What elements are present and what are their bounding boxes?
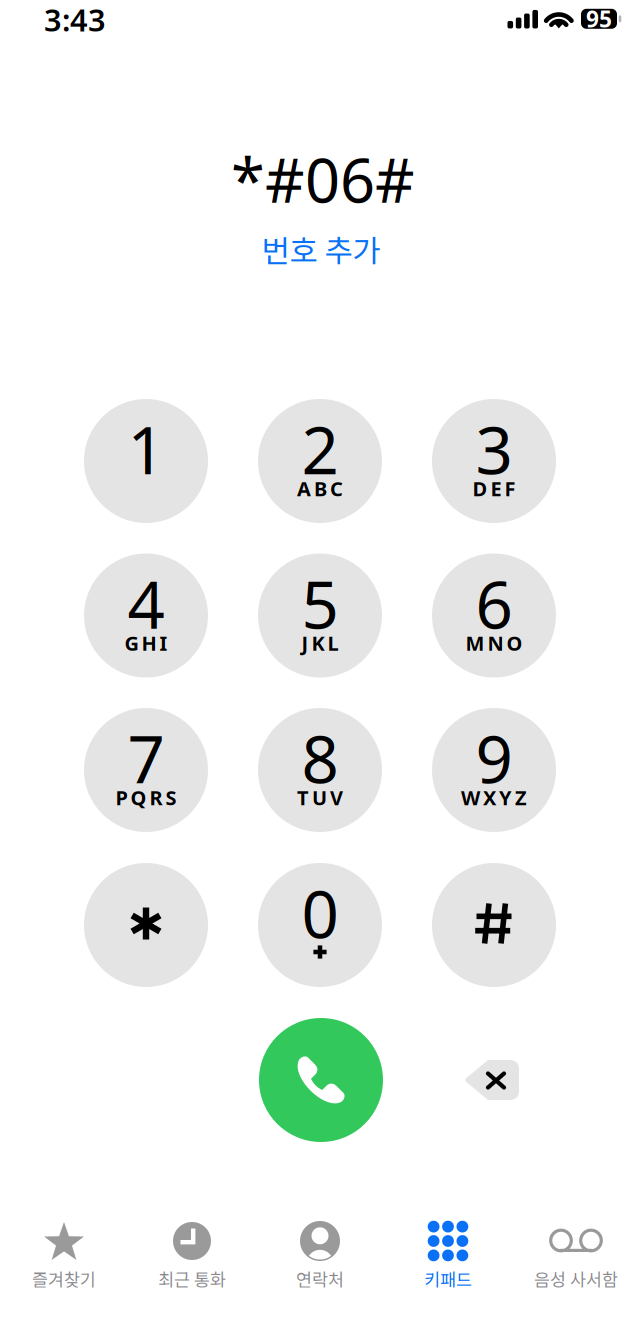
button[interactable]: Delete bbox=[452, 1044, 532, 1116]
staticText: M N O bbox=[465, 630, 522, 656]
staticText: 0 bbox=[301, 870, 338, 956]
button[interactable]: 키패드 bbox=[384, 1219, 512, 1299]
button[interactable]: 1 bbox=[84, 399, 208, 523]
staticText: 음성 사서함 bbox=[534, 1266, 618, 1292]
button[interactable]: 7 bbox=[84, 708, 208, 832]
staticText: G H I bbox=[124, 630, 167, 656]
staticText: 3 bbox=[475, 406, 512, 492]
staticText: 1 bbox=[127, 406, 164, 492]
staticText: 6 bbox=[475, 560, 512, 647]
button[interactable]: 음성 사서함 bbox=[512, 1219, 640, 1299]
button[interactable]: 3 bbox=[432, 399, 556, 523]
staticText: T U V bbox=[297, 784, 343, 811]
staticText: 95 bbox=[586, 4, 612, 34]
staticText: *#06# bbox=[231, 138, 415, 220]
staticText: A B C bbox=[297, 475, 343, 502]
button[interactable]: 9 bbox=[432, 708, 556, 832]
staticText: 7 bbox=[127, 715, 164, 801]
staticText: 9 bbox=[475, 715, 512, 801]
staticText: 2 bbox=[301, 406, 338, 492]
staticText: 5 bbox=[301, 560, 338, 647]
button[interactable]: 8 bbox=[258, 708, 382, 832]
staticText: 키패드 bbox=[424, 1266, 472, 1292]
button[interactable]: 6 bbox=[432, 553, 556, 677]
button[interactable]: 4 bbox=[84, 553, 208, 677]
button[interactable]: 5 bbox=[258, 553, 382, 677]
staticText: 번호 추가 bbox=[261, 227, 380, 271]
button[interactable]: 2 bbox=[258, 399, 382, 523]
staticText: 즐겨찾기 bbox=[32, 1266, 96, 1292]
staticText: D E F bbox=[472, 475, 515, 502]
button[interactable]: 최근 통화 bbox=[128, 1219, 256, 1299]
button[interactable]: 연락처 bbox=[256, 1219, 384, 1299]
staticText: J K L bbox=[301, 630, 338, 656]
button[interactable] bbox=[432, 863, 556, 987]
staticText: 최근 통화 bbox=[158, 1266, 226, 1292]
button[interactable] bbox=[84, 863, 208, 987]
button[interactable]: 번호 추가 bbox=[241, 227, 401, 271]
staticText: 연락처 bbox=[296, 1266, 344, 1292]
button[interactable]: 0 bbox=[258, 863, 382, 987]
staticText: 4 bbox=[127, 560, 164, 647]
button[interactable]: Call bbox=[259, 1018, 383, 1142]
staticText: 8 bbox=[301, 715, 338, 801]
staticText: P Q R S bbox=[115, 784, 176, 811]
staticText: W X Y Z bbox=[461, 784, 527, 811]
button[interactable]: 즐겨찾기 bbox=[0, 1219, 128, 1299]
staticText: 3:43 bbox=[44, 0, 106, 40]
